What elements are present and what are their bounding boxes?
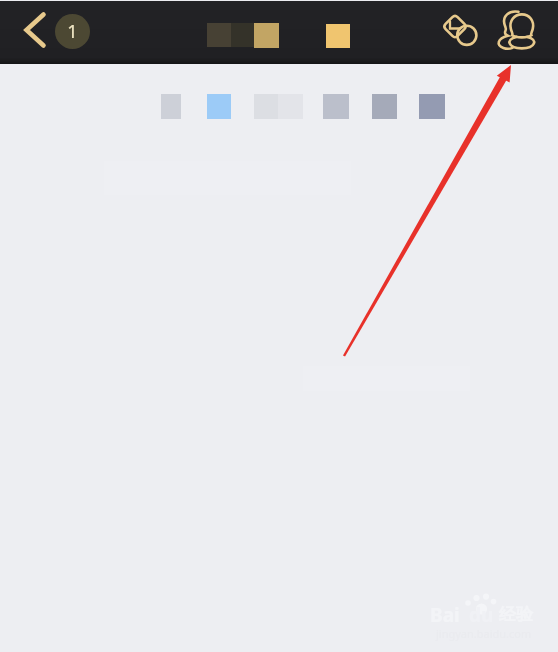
button[interactable]: 1 unread bbox=[55, 14, 90, 49]
button[interactable]: Coupons bbox=[437, 5, 485, 53]
staticText: 1 bbox=[67, 19, 78, 44]
button[interactable]: Chat title bbox=[207, 23, 279, 48]
button[interactable]: Tabs bbox=[161, 94, 445, 119]
button[interactable]: Contacts bbox=[492, 7, 540, 55]
button[interactable]: Back bbox=[12, 7, 58, 53]
